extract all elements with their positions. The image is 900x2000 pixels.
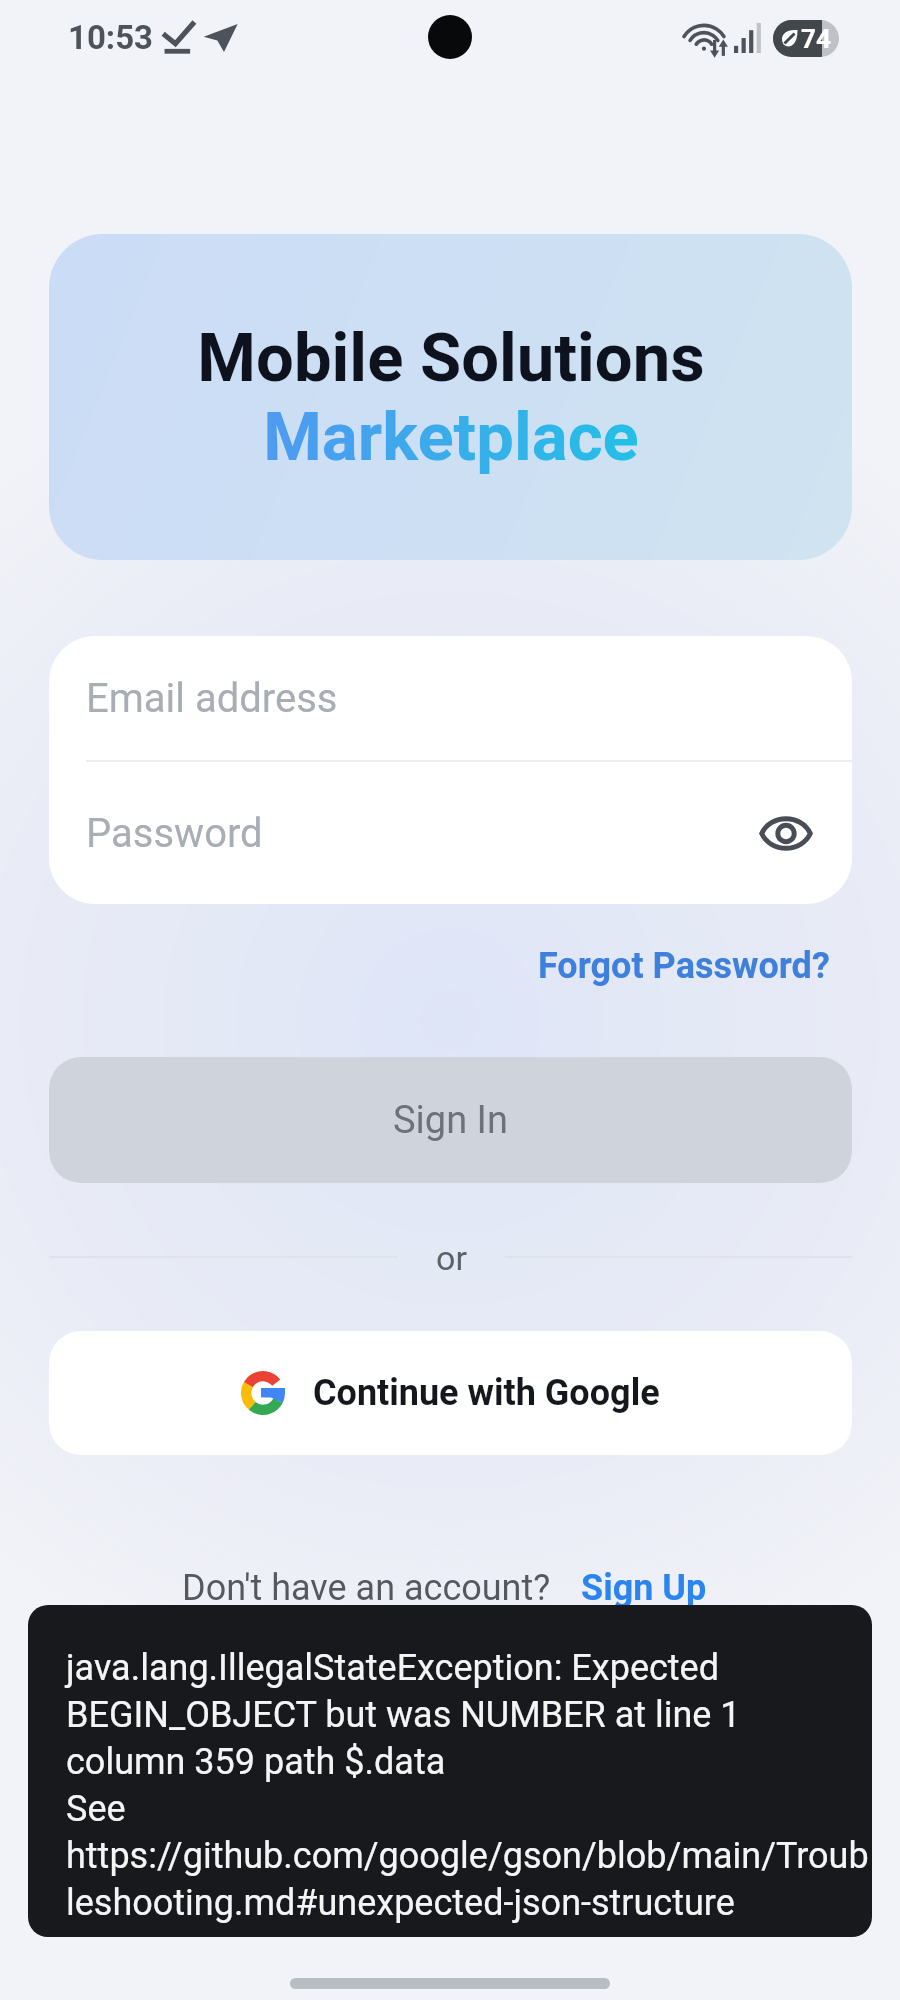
staticText: or [436, 1238, 467, 1278]
staticText: Don't have an account? [182, 1567, 551, 1609]
staticText: java.lang.IllegalStateException: Expecte… [66, 1647, 872, 1924]
staticText: Sign Up [581, 1567, 707, 1609]
button[interactable]: Sign Up [581, 1567, 707, 1609]
button[interactable]: Show password [748, 795, 824, 871]
staticText: Email address [86, 675, 338, 722]
button[interactable]: Email address [49, 636, 852, 760]
staticText: Password [86, 810, 263, 857]
staticText: Marketplace [263, 398, 639, 477]
staticText: 10:53 [68, 18, 154, 57]
staticText: Sign In [393, 1098, 508, 1143]
button[interactable]: Forgot Password? [538, 938, 830, 994]
button[interactable]: Password [49, 762, 852, 904]
button[interactable]: Continue with Google [49, 1331, 852, 1455]
staticText: Forgot Password? [538, 945, 830, 987]
staticText: 74 [801, 24, 831, 54]
button[interactable]: Sign In [49, 1057, 852, 1183]
staticText: Mobile Solutions [197, 319, 705, 398]
button[interactable]: java.lang.IllegalStateException: Expecte… [28, 1605, 872, 1937]
staticText: Continue with Google [313, 1372, 660, 1414]
